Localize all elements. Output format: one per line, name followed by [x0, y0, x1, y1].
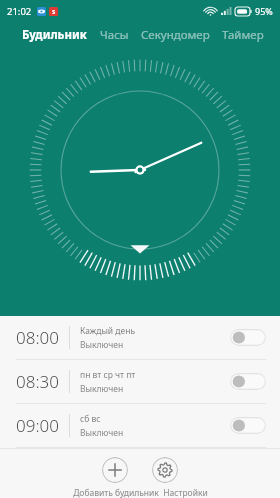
button[interactable]: Часы: [98, 24, 131, 46]
staticText: 09:00: [16, 414, 59, 437]
button[interactable]: Toggle alarm: [230, 417, 266, 434]
button[interactable]: 09:00: [0, 404, 280, 447]
staticText: пн вт ср чт пт: [80, 369, 136, 381]
staticText: Выключен: [80, 339, 124, 351]
staticText: Выключен: [80, 383, 124, 395]
button[interactable]: Секундомер: [139, 24, 212, 46]
button[interactable]: 08:00: [0, 316, 280, 359]
staticText: 08:00: [16, 326, 59, 349]
staticText: Секундомер: [141, 27, 210, 43]
staticText: 21:02: [7, 5, 32, 18]
staticText: сб вс: [80, 413, 101, 425]
button[interactable]: 08:30: [0, 360, 280, 403]
staticText: Каждый день: [80, 325, 136, 337]
button[interactable]: Таймер: [220, 24, 266, 46]
button[interactable]: Toggle alarm: [230, 373, 266, 390]
staticText: Настройки: [163, 487, 208, 498]
staticText: Добавить будильник: [73, 487, 159, 498]
button[interactable]: Добавить будильник: [102, 457, 128, 483]
staticText: Выключен: [80, 427, 124, 439]
staticText: Будильник: [22, 27, 87, 43]
button[interactable]: Настройки: [152, 457, 178, 483]
button[interactable]: Будильник: [20, 24, 89, 46]
button[interactable]: Toggle alarm: [230, 329, 266, 346]
staticText: Часы: [100, 27, 129, 43]
staticText: S: [52, 8, 56, 16]
staticText: 08:30: [16, 370, 59, 393]
staticText: 95%: [255, 5, 273, 17]
staticText: Таймер: [222, 27, 264, 43]
